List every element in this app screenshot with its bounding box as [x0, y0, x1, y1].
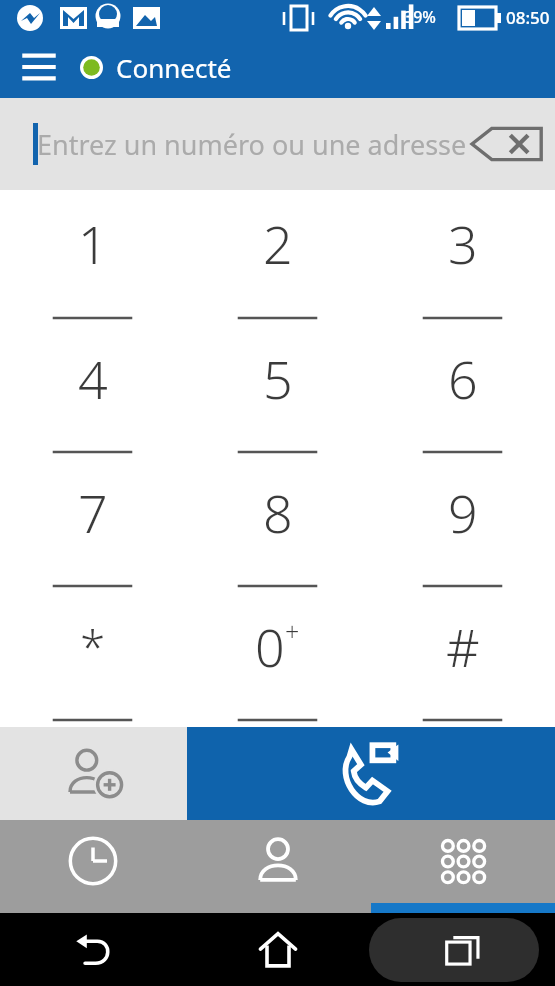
button[interactable]: Contacts [185, 820, 370, 913]
staticText: 3 [448, 208, 478, 279]
staticText: * [80, 615, 106, 678]
button[interactable]: 5 [185, 325, 370, 459]
button[interactable]: Video call [187, 727, 555, 820]
button[interactable]: Add contact [0, 727, 187, 820]
button[interactable]: 6 [370, 325, 555, 459]
button[interactable]: 2 [185, 190, 370, 325]
button[interactable]: 9 [370, 459, 555, 593]
button[interactable]: 3 [370, 190, 555, 325]
staticText: Connecté [116, 50, 232, 85]
button[interactable]: 8 [185, 459, 370, 593]
staticText: 6 [448, 343, 478, 414]
staticText: 9 [448, 477, 478, 548]
staticText: Entrez un numéro ou une adresse [37, 126, 467, 163]
button[interactable]: 4 [0, 325, 185, 459]
button[interactable]: * [0, 593, 185, 727]
staticText: # [446, 611, 480, 682]
staticText: 5 [263, 343, 293, 414]
button[interactable]: 7 [0, 459, 185, 593]
button[interactable]: Recent calls [0, 820, 185, 913]
button[interactable]: # [370, 593, 555, 727]
staticText: 39% [404, 6, 436, 28]
button[interactable]: Dialpad [370, 820, 555, 913]
button[interactable]: Entrez un numéro ou une adresse [0, 98, 555, 190]
staticText: 7 [78, 477, 108, 548]
staticText: + [285, 614, 300, 648]
staticText: 08:50 [506, 6, 550, 29]
staticText: 1 [78, 208, 108, 279]
staticText: 0 [255, 611, 285, 682]
button[interactable]: 0 [185, 593, 370, 727]
staticText: 2 [263, 208, 293, 279]
button[interactable]: Backspace [469, 118, 545, 170]
staticText: 4 [78, 343, 108, 414]
staticText: 8 [263, 477, 293, 548]
button[interactable]: 1 [0, 190, 185, 325]
button[interactable]: Menu [12, 40, 66, 94]
